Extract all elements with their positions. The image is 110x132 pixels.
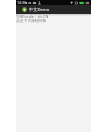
staticText: 14:36: [17, 0, 27, 5]
staticText: 中文Demo: [29, 7, 50, 13]
staticText: 当前locale：zh-CN 点击下方按钮切换: [16, 14, 91, 23]
other: App icon: [22, 7, 27, 12]
